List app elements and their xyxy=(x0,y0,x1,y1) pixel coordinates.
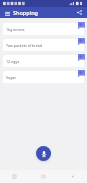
button[interactable]: Sugar xyxy=(3,71,84,83)
button[interactable]: Home xyxy=(29,170,58,183)
button[interactable]: Open navigation menu xyxy=(3,9,11,17)
staticText: 12 eggs xyxy=(6,59,20,64)
button[interactable]: Two packets of bread xyxy=(3,39,84,51)
staticText: 1kg onions xyxy=(6,27,25,32)
button[interactable]: Back xyxy=(58,170,87,183)
button[interactable]: Share xyxy=(75,8,84,17)
staticText: Sugar xyxy=(6,75,16,80)
button[interactable]: Recent apps xyxy=(0,170,29,183)
button[interactable]: Item image xyxy=(78,38,85,45)
button[interactable]: 1kg onions xyxy=(3,23,84,35)
staticText: Two packets of bread xyxy=(6,43,42,48)
button[interactable]: Item image xyxy=(78,54,85,61)
button[interactable]: Item image xyxy=(78,70,85,77)
button[interactable]: 12 eggs xyxy=(3,55,84,67)
staticText: Shopping xyxy=(13,9,75,16)
button[interactable]: Item image xyxy=(78,22,85,29)
button[interactable]: Add item by voice xyxy=(36,146,51,161)
